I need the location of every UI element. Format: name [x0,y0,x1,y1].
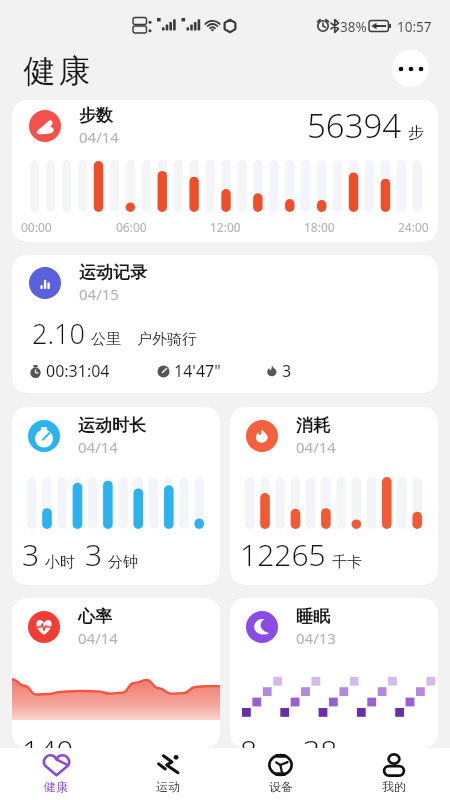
staticText: 12:00 [210,219,241,235]
staticText: 14'47" [174,360,221,382]
button[interactable]: 我的 [337,748,450,800]
staticText: 健康 [44,779,68,794]
staticText: 04/14 [78,437,118,457]
staticText: 04/14 [78,628,118,648]
staticText: 12265 [240,534,326,575]
button[interactable]: 运动时长 [12,407,220,585]
staticText: 小时 [45,553,75,572]
button[interactable]: 健康 [0,748,112,800]
staticText: 公里 [91,330,121,349]
staticText: 消耗 [296,415,330,436]
button[interactable]: 心率 [12,598,220,748]
staticText: 140 [22,730,74,748]
staticText: 运动 [156,779,180,794]
staticText: 3 [22,534,40,575]
button[interactable]: 设备 [224,748,337,800]
staticText: 户外骑行 [137,330,197,349]
staticText: 24:00 [398,219,429,235]
button[interactable]: 运动记录 [12,255,438,393]
button[interactable]: 步数 [12,100,438,242]
staticText: 2.10 [32,315,85,352]
button[interactable]: 运动 [112,748,224,800]
staticText: 04/14 [79,127,119,147]
staticText: 00:00 [21,219,52,235]
staticText: 18:00 [304,219,335,235]
staticText: 04/15 [79,284,119,304]
staticText: 56394 [307,103,402,148]
staticText: 3 [85,534,103,575]
staticText: 00:31:04 [46,360,110,382]
staticText: 步数 [79,105,113,126]
staticText: 健康 [22,51,92,91]
staticText: 运动时长 [78,415,146,436]
staticText: 千卡 [332,553,362,572]
staticText: 运动记录 [79,262,147,283]
staticText: 38 [303,730,338,748]
button[interactable]: 睡眠 [230,598,438,748]
staticText: 06:00 [116,219,147,235]
staticText: 04/14 [296,437,336,457]
staticText: 8 [240,730,258,748]
staticText: 3 [282,360,292,382]
staticText: 设备 [269,779,293,794]
staticText: 心率 [78,606,112,627]
staticText: 分钟 [108,553,138,572]
staticText: 10:57 [397,18,432,36]
staticText: 睡眠 [296,606,330,627]
staticText: 步 [408,123,424,143]
staticText: 38% [340,18,367,36]
button[interactable]: 消耗 [230,407,438,585]
staticText: 04/13 [296,628,336,648]
button[interactable]: More options [392,50,429,87]
staticText: 我的 [382,779,406,794]
